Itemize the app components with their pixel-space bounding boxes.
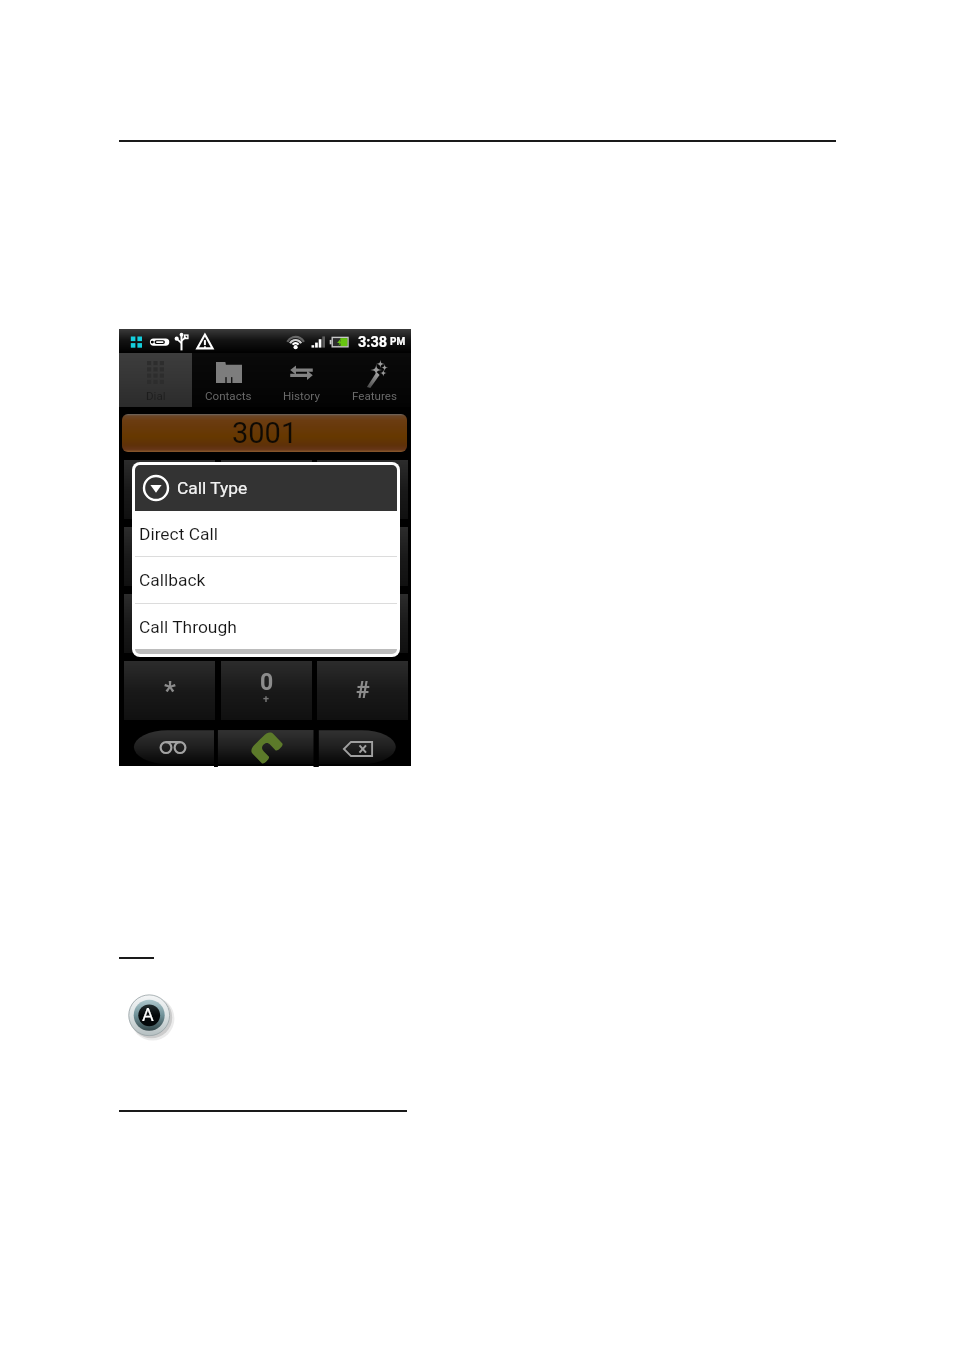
button[interactable]: Contacts	[192, 353, 265, 407]
staticText: PQRS	[155, 626, 184, 639]
button[interactable]: Voicemail	[119, 723, 214, 766]
button[interactable]: Direct Call	[135, 511, 397, 556]
staticText: 3:38	[358, 333, 388, 350]
staticText: Direct Call	[139, 524, 218, 544]
button[interactable]: 3	[317, 460, 408, 519]
button[interactable]: Callback	[135, 557, 397, 603]
button[interactable]: History	[265, 353, 338, 407]
button[interactable]: 1	[124, 460, 215, 519]
staticText: PM	[390, 336, 406, 348]
staticText: A	[142, 1004, 154, 1025]
staticText: 5	[260, 535, 274, 562]
staticText: Features	[352, 389, 397, 403]
staticText: Contacts	[205, 389, 252, 403]
staticText: 0	[260, 669, 274, 696]
staticText: Call Through	[139, 617, 237, 637]
staticText: 8	[260, 602, 274, 629]
staticText: 9	[356, 602, 370, 629]
button[interactable]: 4	[124, 527, 215, 586]
button[interactable]: 8	[221, 594, 312, 653]
button[interactable]: 9	[317, 594, 408, 653]
button[interactable]: 0	[221, 661, 312, 720]
button[interactable]: 7	[124, 594, 215, 653]
button[interactable]: Call	[218, 723, 319, 766]
button[interactable]: Call Type	[135, 465, 397, 511]
button[interactable]: Features	[338, 353, 411, 407]
staticText: 7	[163, 602, 177, 629]
button[interactable]: 2	[221, 460, 312, 519]
button[interactable]: Call Through	[135, 604, 397, 649]
staticText: History	[283, 389, 320, 403]
staticText: 6	[356, 535, 370, 562]
button[interactable]: #	[317, 661, 408, 720]
button[interactable]: *	[124, 661, 215, 720]
staticText: #	[356, 677, 370, 704]
staticText: 1	[163, 476, 177, 503]
staticText: 3001	[232, 416, 298, 450]
staticText: Call Type	[177, 478, 248, 498]
button[interactable]: 6	[317, 527, 408, 586]
staticText: +	[263, 693, 270, 706]
button[interactable]: Delete	[319, 723, 411, 766]
button[interactable]: Dial	[119, 353, 192, 407]
button[interactable]: 5	[221, 527, 312, 586]
staticText: Dial	[146, 389, 166, 403]
staticText: Callback	[139, 570, 206, 590]
staticText: 4	[163, 535, 177, 562]
staticText: *	[164, 676, 176, 706]
